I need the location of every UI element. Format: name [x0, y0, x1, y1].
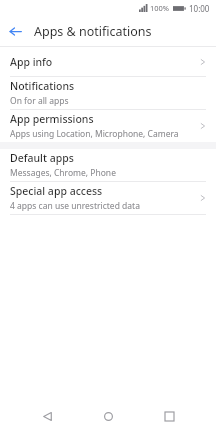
staticText: App permissions	[10, 112, 94, 126]
button[interactable]: App info	[0, 47, 216, 76]
staticText: On for all apps	[10, 95, 69, 107]
button[interactable]: Back	[0, 16, 30, 46]
staticText: Apps using Location, Microphone, Camera	[10, 128, 179, 140]
button[interactable]: App permissions	[0, 110, 216, 142]
staticText: Apps & notifications	[34, 23, 152, 40]
staticText: Notifications	[10, 79, 75, 93]
button[interactable]: Notifications	[0, 77, 216, 109]
button[interactable]: Default apps	[0, 149, 216, 181]
staticText: 10:00	[189, 3, 210, 14]
staticText: 100%	[150, 3, 170, 13]
button[interactable]: Home	[94, 402, 122, 430]
button[interactable]: Special app access	[0, 182, 216, 214]
button[interactable]: Back	[33, 402, 61, 430]
staticText: Default apps	[10, 151, 74, 165]
button[interactable]: Recent apps	[155, 402, 183, 430]
staticText: Messages, Chrome, Phone	[10, 167, 116, 179]
staticText: 4 apps can use unrestricted data	[10, 200, 140, 212]
staticText: Special app access	[10, 184, 103, 198]
staticText: App info	[10, 55, 53, 69]
